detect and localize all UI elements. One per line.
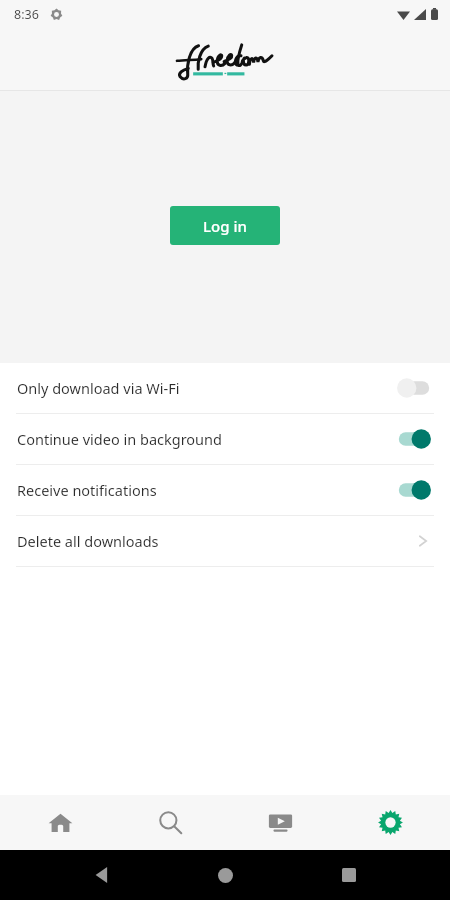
button[interactable]: Videos <box>230 795 330 850</box>
button[interactable]: On <box>395 428 433 450</box>
button[interactable]: Only download via Wi-Fi <box>0 363 450 413</box>
staticText: Continue video in background <box>17 429 222 449</box>
button[interactable]: Log in <box>170 206 280 245</box>
button[interactable]: Recents <box>327 853 371 897</box>
button[interactable]: On <box>395 479 433 501</box>
staticText: Log in <box>203 216 247 236</box>
button[interactable]: Search <box>120 795 220 850</box>
other: Delete all downloads <box>413 531 433 551</box>
staticText: Delete all downloads <box>17 531 159 551</box>
staticText: 8:36 <box>14 6 39 23</box>
button[interactable]: Home <box>203 853 247 897</box>
button[interactable]: Off <box>395 377 433 399</box>
button[interactable]: Home <box>10 795 110 850</box>
button[interactable]: Delete all downloads <box>0 516 450 566</box>
button[interactable]: Settings <box>340 795 440 850</box>
button[interactable]: Back <box>80 853 124 897</box>
staticText: Only download via Wi-Fi <box>17 378 180 398</box>
staticText: Receive notifications <box>17 480 157 500</box>
button[interactable]: Continue video in background <box>0 414 450 464</box>
button[interactable]: Receive notifications <box>0 465 450 515</box>
